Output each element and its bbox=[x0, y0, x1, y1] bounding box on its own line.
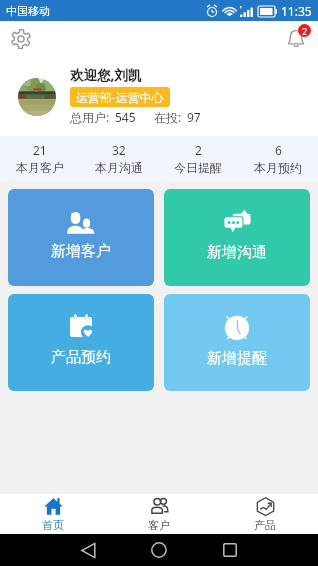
staticText: 欢迎您,刘凯 bbox=[70, 66, 142, 84]
staticText: 运营部-运营中心 bbox=[76, 89, 164, 105]
button[interactable]: 客户 bbox=[106, 494, 212, 534]
button[interactable]: Back bbox=[76, 538, 100, 562]
staticText: 32 bbox=[112, 142, 126, 158]
staticText: 新增提醒 bbox=[207, 349, 267, 368]
button[interactable]: 首页 bbox=[0, 494, 106, 534]
button[interactable]: 新增沟通 bbox=[164, 189, 310, 286]
button[interactable]: 2 bbox=[158, 136, 238, 181]
staticText: 本月沟通 bbox=[95, 160, 143, 175]
staticText: 产品预约 bbox=[51, 348, 111, 367]
button[interactable]: Recents bbox=[218, 538, 242, 562]
button[interactable]: 产品 bbox=[212, 494, 318, 534]
staticText: 总用户: bbox=[70, 109, 110, 125]
staticText: 本月预约 bbox=[254, 160, 302, 175]
staticText: 新增客户 bbox=[51, 242, 111, 261]
button[interactable]: 新增提醒 bbox=[164, 294, 310, 391]
staticText: 今日提醒 bbox=[174, 160, 222, 175]
button[interactable]: 21 bbox=[0, 136, 79, 181]
staticText: 在投: bbox=[154, 109, 182, 125]
button[interactable]: Settings bbox=[8, 26, 34, 52]
button[interactable]: Home bbox=[147, 538, 171, 562]
staticText: 2 bbox=[302, 25, 308, 37]
staticText: 客户 bbox=[148, 518, 170, 532]
staticText: 本月客户 bbox=[16, 160, 64, 175]
staticText: 545 bbox=[115, 109, 136, 125]
staticText: 97 bbox=[187, 109, 201, 125]
button[interactable]: 32 bbox=[79, 136, 158, 181]
button[interactable]: Notifications bbox=[282, 25, 310, 53]
staticText: 中国移动 bbox=[6, 4, 50, 18]
staticText: 新增沟通 bbox=[207, 243, 267, 262]
staticText: 11:35 bbox=[281, 3, 312, 19]
button[interactable]: 产品预约 bbox=[8, 294, 154, 391]
staticText: 首页 bbox=[42, 518, 64, 532]
staticText: 2 bbox=[195, 142, 202, 158]
button[interactable]: 新增客户 bbox=[8, 189, 154, 286]
staticText: 6 bbox=[275, 142, 282, 158]
staticText: 产品 bbox=[254, 518, 276, 532]
button[interactable]: 6 bbox=[238, 136, 318, 181]
staticText: 21 bbox=[33, 142, 47, 158]
